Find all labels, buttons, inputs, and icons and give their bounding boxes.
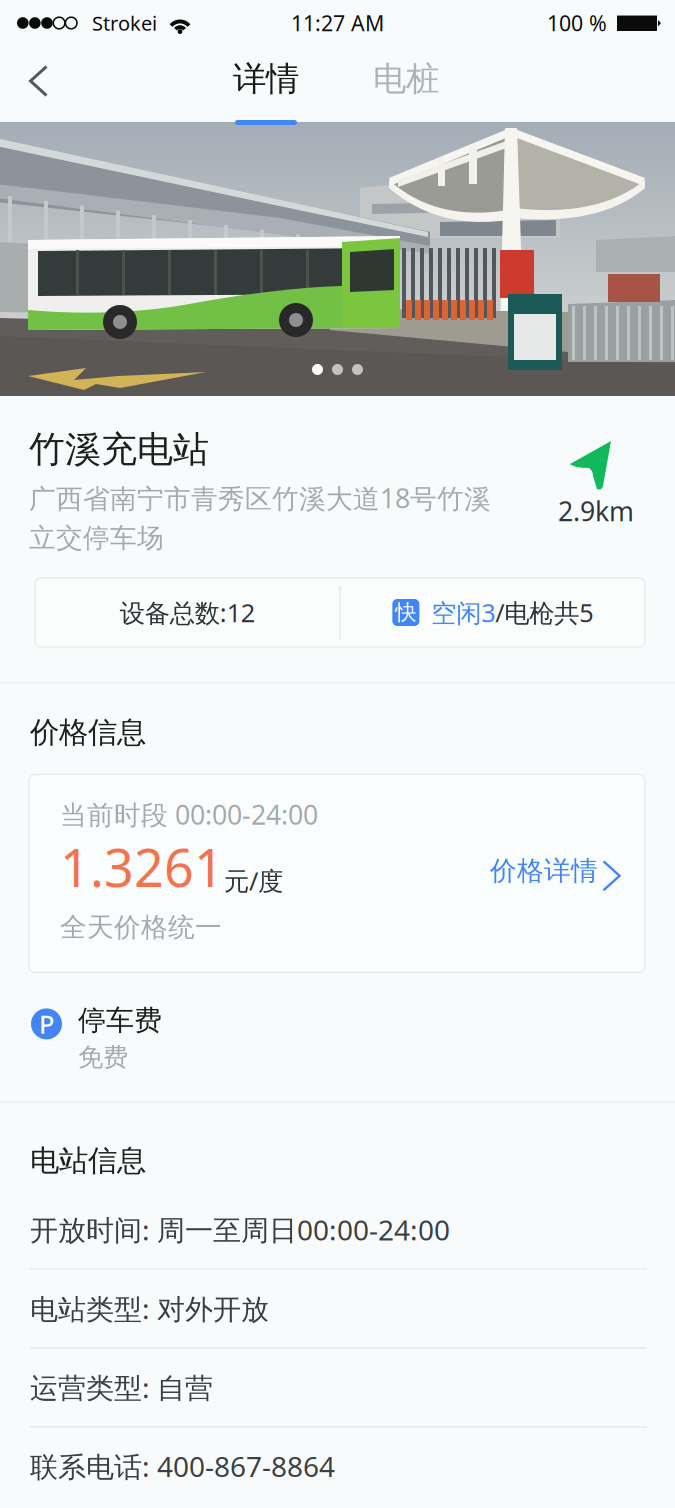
staticText: 元/度 [224, 864, 283, 897]
staticText: 停车费 [78, 1003, 162, 1038]
staticText: P [39, 1007, 54, 1041]
staticText: 开放时间: 周一至周日00:00-24:00 [30, 1211, 450, 1248]
staticText: 电站信息 [30, 1143, 146, 1179]
button[interactable]: Navigate, 2.9 kilometres [558, 423, 647, 525]
staticText: 广西省南宁市青秀区竹溪大道18号竹溪 [29, 480, 491, 516]
staticText: 详情 [233, 58, 299, 99]
staticText: 电站类型: 对外开放 [30, 1290, 269, 1327]
staticText: 空闲3 [431, 596, 495, 629]
staticText: 设备总数:12 [120, 596, 255, 629]
staticText: 全天价格统一 [60, 911, 222, 944]
button[interactable]: Back [0, 46, 80, 122]
staticText: 价格详情 [490, 854, 598, 887]
staticText: 2.9km [558, 493, 634, 529]
button[interactable]: 电桩 [336, 46, 476, 122]
staticText: /电枪共5 [495, 596, 593, 629]
staticText: 价格信息 [30, 714, 146, 750]
staticText: 竹溪充电站 [29, 427, 209, 472]
staticText: 11:27 AM [291, 9, 384, 37]
staticText: 快 [395, 599, 416, 626]
staticText: 1.3261 [60, 832, 224, 901]
button[interactable]: 价格详情 [490, 774, 645, 887]
staticText: 立交停车场 [29, 522, 164, 554]
staticText: 免费 [78, 1042, 128, 1073]
staticText: 电桩 [373, 58, 439, 99]
staticText: 联系电话: 400-867-8864 [30, 1448, 335, 1485]
staticText: 当前时段 00:00-24:00 [60, 797, 318, 832]
staticText: 100 % [547, 9, 607, 37]
staticText: Strokei [92, 10, 157, 36]
staticText: 运营类型: 自营 [30, 1369, 213, 1406]
button[interactable]: 详情 [196, 46, 336, 122]
